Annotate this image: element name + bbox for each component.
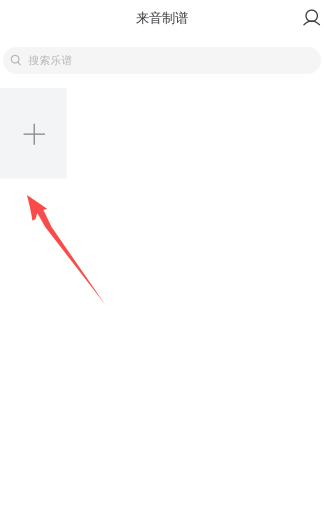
button[interactable]: New score	[0, 88, 66, 178]
button[interactable]: Account	[295, 4, 324, 32]
button[interactable]: 搜索乐谱	[3, 47, 321, 74]
staticText: 来音制谱	[136, 10, 188, 26]
staticText: 搜索乐谱	[28, 54, 72, 67]
